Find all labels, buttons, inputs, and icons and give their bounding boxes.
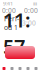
staticText: 3:00 bbox=[22, 19, 36, 27]
button[interactable]: Start bbox=[5, 46, 35, 59]
staticText: 0:00 bbox=[24, 6, 38, 15]
staticText: 9:41 bbox=[3, 0, 13, 7]
button[interactable]: Tab bbox=[24, 65, 32, 72]
staticText: ▮▮ bbox=[33, 1, 37, 6]
button[interactable]: Tab bbox=[16, 65, 24, 72]
staticText: 11:57 bbox=[3, 6, 31, 59]
button[interactable]: Tab bbox=[32, 65, 40, 72]
staticText: 0:00 bbox=[2, 6, 16, 15]
button[interactable]: Tab bbox=[0, 65, 8, 72]
button[interactable]: Tab bbox=[8, 65, 16, 72]
staticText: Period 1 bbox=[4, 14, 19, 32]
